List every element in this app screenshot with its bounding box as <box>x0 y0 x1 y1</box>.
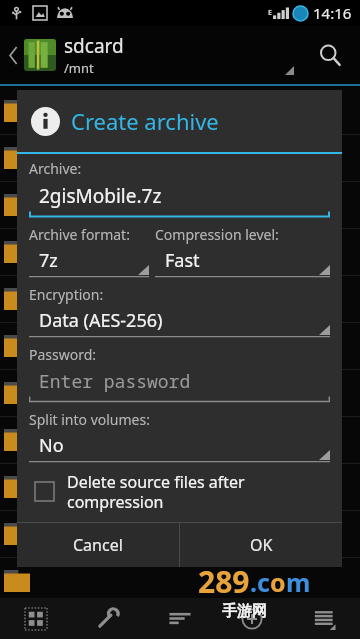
staticText: 7z <box>39 248 138 273</box>
staticText: E <box>268 8 272 18</box>
button[interactable] <box>0 182 360 228</box>
button[interactable] <box>0 511 360 557</box>
button[interactable]: Tools <box>72 598 144 639</box>
staticText: Create archive <box>71 106 219 136</box>
staticText: Archive format: <box>29 225 130 244</box>
staticText: Compression level: <box>155 225 279 244</box>
button[interactable] <box>0 276 360 322</box>
staticText: Data (AES-256) <box>39 308 319 333</box>
button[interactable]: Search <box>308 33 352 77</box>
button[interactable]: Add <box>216 598 288 639</box>
button[interactable]: Sort <box>144 598 216 639</box>
button[interactable] <box>0 417 360 463</box>
staticText: Delete source files after compression <box>67 471 330 512</box>
button[interactable] <box>0 370 360 416</box>
button[interactable] <box>0 229 360 275</box>
button[interactable]: OK <box>180 523 342 567</box>
staticText: 2gisMobile.7z <box>39 183 162 209</box>
button[interactable] <box>0 135 360 181</box>
staticText: OK <box>250 534 273 556</box>
staticText: Cancel <box>73 534 123 556</box>
staticText: m <box>286 565 311 599</box>
staticText: Password: <box>29 345 97 364</box>
button[interactable]: 2gisMobile.7z <box>29 180 330 218</box>
button[interactable]: Enter password <box>29 366 330 403</box>
staticText: 14:16 <box>313 3 352 23</box>
button[interactable]: Dropdown <box>278 35 300 75</box>
button[interactable]: Data (AES-256) <box>29 306 330 338</box>
button[interactable]: Cancel <box>17 523 179 567</box>
button[interactable] <box>0 323 360 369</box>
button[interactable]: sdcard <box>64 33 278 77</box>
staticText: 手游网 <box>222 602 267 621</box>
button[interactable]: 7z <box>29 246 149 278</box>
staticText: 289 <box>198 561 250 602</box>
button[interactable]: Delete source files after compression <box>29 471 330 512</box>
staticText: Archive: <box>29 159 82 178</box>
button[interactable]: Fast <box>155 246 330 278</box>
staticText: Split into volumes: <box>29 410 150 429</box>
staticText: sdcard <box>64 33 124 59</box>
staticText: Enter password <box>39 369 191 394</box>
button[interactable]: More options <box>288 598 360 639</box>
button[interactable] <box>0 88 360 134</box>
button[interactable]: No <box>29 431 330 463</box>
staticText: o <box>270 565 286 599</box>
button[interactable]: Grid view <box>0 598 72 639</box>
button[interactable] <box>0 464 360 510</box>
staticText: Encryption: <box>29 285 104 304</box>
staticText: .c <box>250 565 270 599</box>
button[interactable] <box>0 558 360 604</box>
staticText: No <box>39 433 319 458</box>
button[interactable]: Up <box>4 35 22 75</box>
staticText: Fast <box>165 248 319 273</box>
staticText: /mnt <box>64 59 94 77</box>
